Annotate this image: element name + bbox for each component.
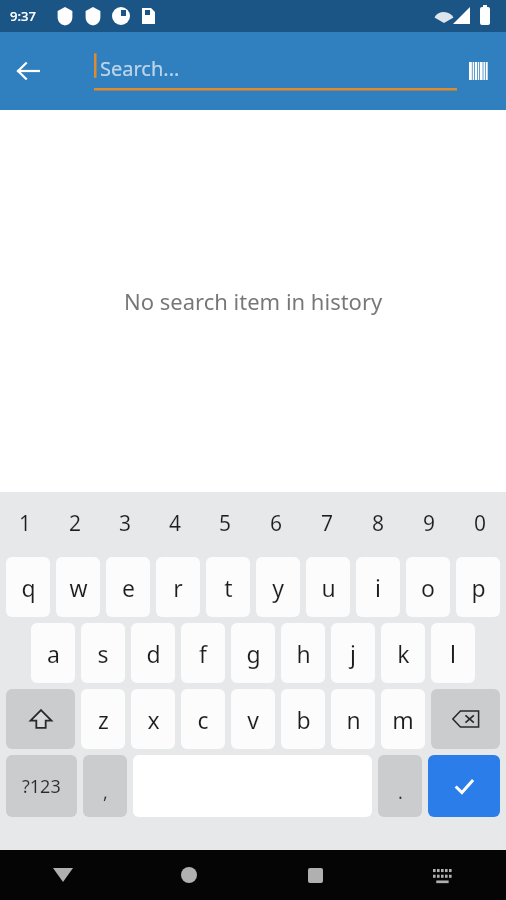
staticText: e bbox=[122, 572, 135, 603]
button[interactable]: p bbox=[456, 557, 500, 617]
button[interactable]: 9 bbox=[404, 492, 455, 554]
staticText: , bbox=[103, 780, 108, 805]
button[interactable]: Back bbox=[0, 850, 126, 900]
staticText: 1 bbox=[19, 509, 32, 538]
button[interactable]: a bbox=[31, 623, 75, 683]
button[interactable]: v bbox=[231, 689, 275, 749]
button[interactable]: , bbox=[83, 755, 127, 817]
button[interactable]: 4 bbox=[150, 492, 200, 554]
staticText: n bbox=[346, 704, 361, 735]
staticText: p bbox=[471, 572, 486, 603]
staticText: z bbox=[98, 704, 109, 735]
staticText: . bbox=[398, 780, 403, 805]
staticText: ?123 bbox=[22, 774, 61, 799]
staticText: j bbox=[350, 638, 356, 669]
button[interactable]: s bbox=[81, 623, 125, 683]
button[interactable]: 1 bbox=[0, 492, 50, 554]
button[interactable]: r bbox=[156, 557, 200, 617]
button[interactable]: d bbox=[131, 623, 175, 683]
staticText: b bbox=[296, 704, 311, 735]
button[interactable]: Enter bbox=[428, 755, 500, 817]
button[interactable]: t bbox=[206, 557, 250, 617]
button[interactable]: Back bbox=[0, 43, 56, 99]
staticText: 3 bbox=[119, 509, 132, 538]
staticText: m bbox=[392, 704, 414, 735]
button[interactable]: 0 bbox=[455, 492, 506, 554]
staticText: 8 bbox=[372, 509, 385, 538]
button[interactable]: k bbox=[381, 623, 425, 683]
button[interactable]: . bbox=[378, 755, 422, 817]
button[interactable]: x bbox=[131, 689, 175, 749]
button[interactable]: Shift bbox=[6, 689, 75, 749]
staticText: t bbox=[224, 572, 233, 603]
button[interactable]: 5 bbox=[200, 492, 251, 554]
button[interactable]: ?123 bbox=[6, 755, 77, 817]
button[interactable]: 7 bbox=[302, 492, 353, 554]
staticText: Search... bbox=[100, 55, 180, 82]
staticText: i bbox=[375, 572, 381, 603]
staticText: 6 bbox=[270, 509, 283, 538]
button[interactable]: 8 bbox=[353, 492, 404, 554]
staticText: o bbox=[421, 572, 435, 603]
button[interactable]: n bbox=[331, 689, 375, 749]
staticText: 9 bbox=[423, 509, 436, 538]
button[interactable]: 2 bbox=[50, 492, 100, 554]
button[interactable]: i bbox=[356, 557, 400, 617]
button[interactable]: u bbox=[306, 557, 350, 617]
button[interactable]: o bbox=[406, 557, 450, 617]
button[interactable]: w bbox=[56, 557, 100, 617]
button[interactable]: y bbox=[256, 557, 300, 617]
staticText: 2 bbox=[69, 509, 82, 538]
staticText: 9:37 bbox=[10, 7, 36, 25]
staticText: c bbox=[197, 704, 209, 735]
staticText: 4 bbox=[169, 509, 182, 538]
button[interactable]: m bbox=[381, 689, 425, 749]
staticText: 5 bbox=[219, 509, 232, 538]
staticText: d bbox=[146, 638, 161, 669]
button[interactable]: 6 bbox=[251, 492, 302, 554]
staticText: s bbox=[97, 638, 109, 669]
staticText: v bbox=[247, 704, 259, 735]
staticText: 7 bbox=[321, 509, 334, 538]
button[interactable]: 3 bbox=[100, 492, 150, 554]
staticText: x bbox=[147, 704, 160, 735]
button[interactable]: Delete bbox=[431, 689, 500, 749]
staticText: h bbox=[296, 638, 311, 669]
button[interactable]: Switch keyboard bbox=[379, 850, 506, 900]
staticText: g bbox=[246, 638, 261, 669]
button[interactable]: l bbox=[431, 623, 475, 683]
staticText: u bbox=[321, 572, 336, 603]
button[interactable]: j bbox=[331, 623, 375, 683]
button[interactable]: Home bbox=[126, 850, 252, 900]
staticText: y bbox=[272, 572, 284, 603]
button[interactable]: e bbox=[106, 557, 150, 617]
staticText: 0 bbox=[474, 509, 487, 538]
button[interactable]: f bbox=[181, 623, 225, 683]
staticText: No search item in history bbox=[124, 286, 383, 316]
staticText: q bbox=[21, 572, 36, 603]
staticText: k bbox=[397, 638, 410, 669]
button[interactable]: Search... bbox=[94, 45, 457, 97]
staticText: r bbox=[173, 572, 183, 603]
button[interactable]: z bbox=[81, 689, 125, 749]
staticText: l bbox=[450, 638, 456, 669]
staticText: f bbox=[199, 638, 207, 669]
button[interactable]: g bbox=[231, 623, 275, 683]
button[interactable]: h bbox=[281, 623, 325, 683]
staticText: a bbox=[47, 638, 60, 669]
button[interactable]: Recents bbox=[252, 850, 379, 900]
button[interactable]: b bbox=[281, 689, 325, 749]
button[interactable]: Scan barcode bbox=[454, 45, 506, 97]
button[interactable]: c bbox=[181, 689, 225, 749]
button[interactable]: q bbox=[6, 557, 50, 617]
staticText: w bbox=[69, 572, 88, 603]
